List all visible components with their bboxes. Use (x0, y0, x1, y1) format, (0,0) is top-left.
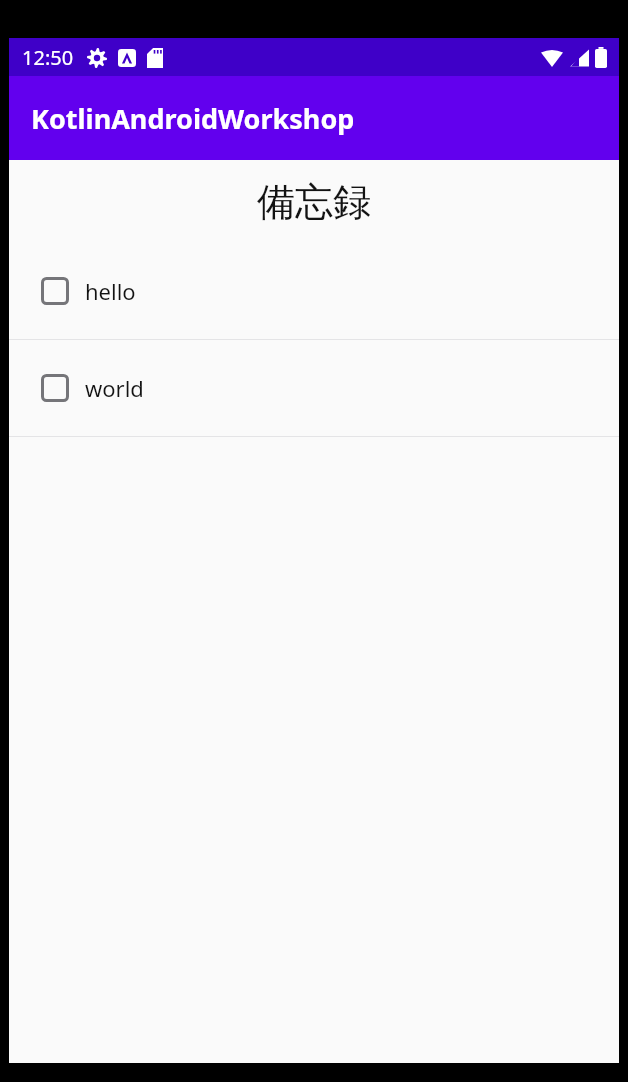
staticText: world (85, 373, 144, 403)
staticText: KotlinAndroidWorkshop (31, 100, 355, 137)
button[interactable]: Toggle hello (9, 243, 619, 339)
button[interactable]: Toggle world (41, 374, 69, 402)
button[interactable]: Toggle hello (41, 277, 69, 305)
staticText: 12:50 (22, 44, 74, 71)
staticText: 備忘録 (257, 178, 371, 226)
staticText: hello (85, 276, 136, 306)
button[interactable]: Toggle world (9, 340, 619, 436)
